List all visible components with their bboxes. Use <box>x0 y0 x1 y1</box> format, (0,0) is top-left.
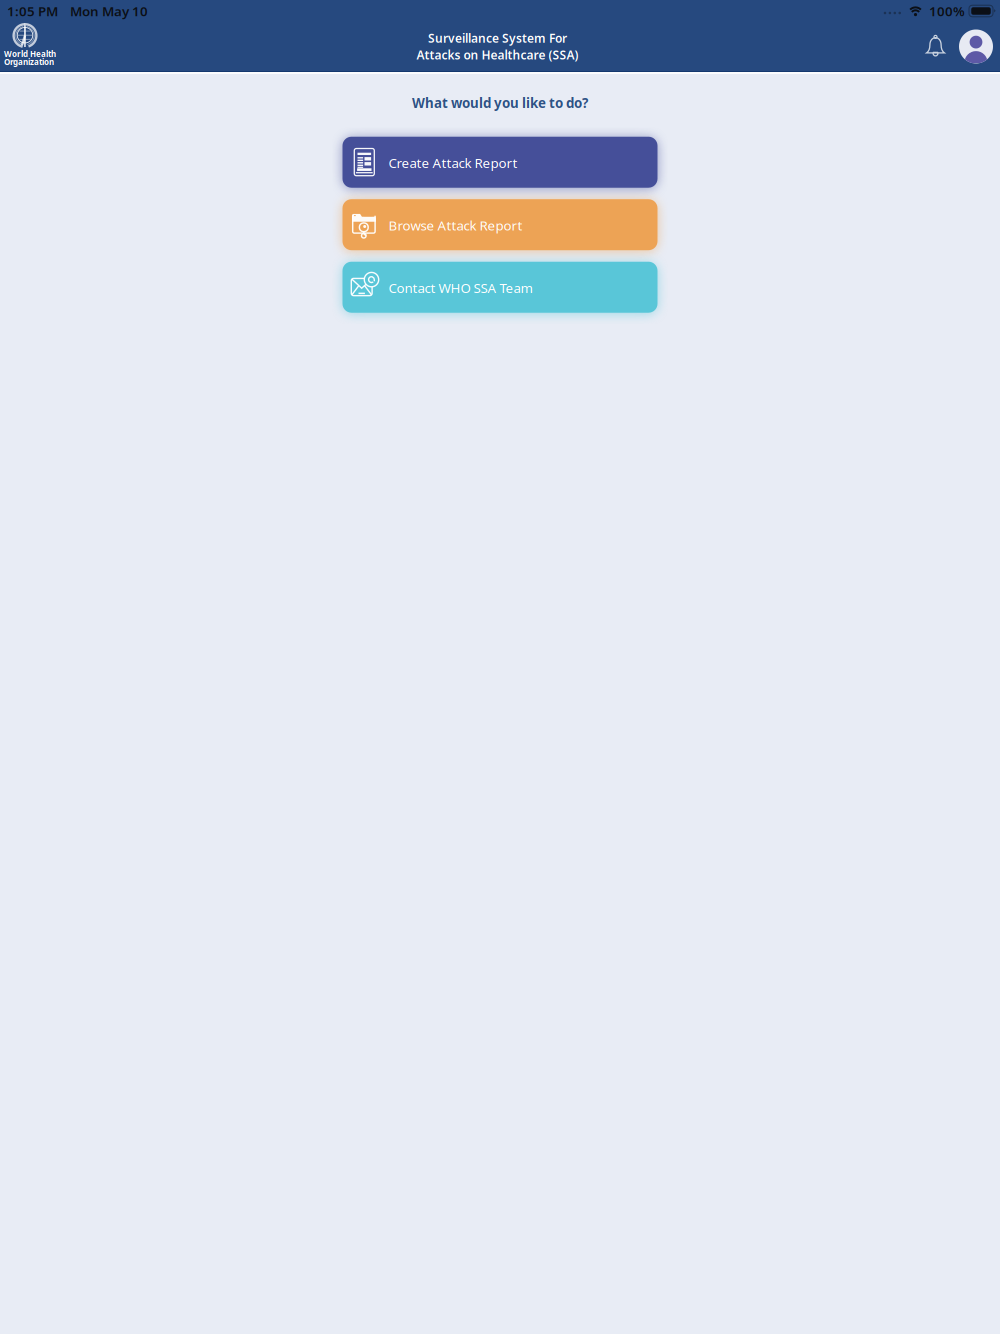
button[interactable]: Create Attack Report <box>342 137 657 188</box>
button[interactable]: Contact WHO SSA Team <box>342 262 657 313</box>
button[interactable]: Account <box>959 29 993 63</box>
staticText: 1:05 PM <box>7 2 58 20</box>
button[interactable]: Notifications <box>925 34 946 58</box>
staticText: Mon May 10 <box>70 2 148 20</box>
staticText: Browse Attack Report <box>388 216 522 234</box>
staticText: Surveillance System For <box>428 30 567 46</box>
button[interactable]: Browse Attack Report <box>342 199 657 250</box>
staticText: Contact WHO SSA Team <box>388 279 532 297</box>
staticText: 100% <box>929 2 965 20</box>
staticText: Attacks on Healthcare (SSA) <box>416 47 578 63</box>
staticText: Create Attack Report <box>388 154 517 172</box>
staticText: Organization <box>4 57 54 67</box>
staticText: What would you like to do? <box>412 94 588 112</box>
staticText: World Health <box>4 49 56 59</box>
